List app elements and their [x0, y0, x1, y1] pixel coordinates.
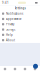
staticText: Notifications [6, 12, 23, 15]
staticText: Help [6, 33, 13, 37]
staticText: 9:41 [2, 1, 9, 4]
button[interactable]: Compose [33, 64, 38, 69]
button[interactable]: Notifications [0, 11, 40, 16]
staticText: Storage [6, 28, 16, 31]
button[interactable]: Privacy [0, 22, 40, 27]
button[interactable]: About [0, 37, 40, 43]
button[interactable]: Tab [0, 66, 10, 72]
button[interactable]: Appearance [0, 16, 40, 22]
staticText: Privacy [6, 22, 14, 26]
button[interactable]: Tab [30, 66, 40, 72]
staticText: About [6, 38, 15, 42]
button[interactable]: Storage [0, 27, 40, 32]
staticText: Settings [14, 6, 25, 10]
button[interactable]: Help [0, 32, 40, 37]
staticText: Appearance [6, 17, 22, 21]
button[interactable]: Tab [20, 66, 30, 72]
button[interactable]: Tab [10, 66, 20, 72]
